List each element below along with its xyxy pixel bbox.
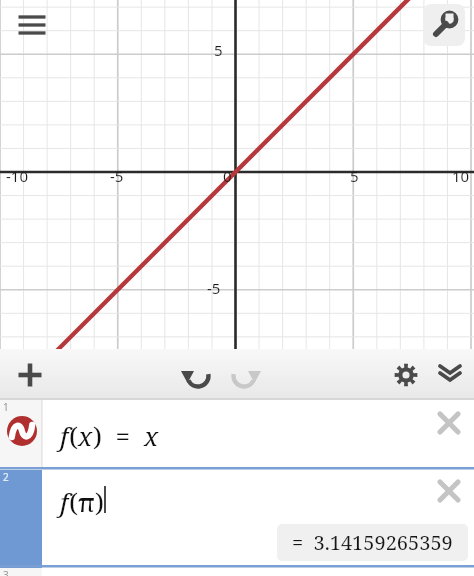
button[interactable]: = 3.14159265359 xyxy=(292,529,453,556)
staticText: π xyxy=(78,484,95,519)
staticText: -10 xyxy=(6,166,28,186)
staticText: 5 xyxy=(214,40,223,60)
button[interactable]: Menu xyxy=(12,6,52,46)
button[interactable]: Collapse xyxy=(428,353,472,397)
staticText: ) xyxy=(95,484,104,519)
staticText: 3 xyxy=(3,568,9,576)
button[interactable]: Undo xyxy=(176,353,220,397)
staticText: 5 xyxy=(350,166,359,186)
staticText: f xyxy=(60,418,69,453)
button[interactable]: Add expression xyxy=(8,353,52,397)
button[interactable]: Redo xyxy=(222,353,266,397)
button[interactable]: 1 xyxy=(0,400,474,467)
staticText: = xyxy=(102,418,144,453)
staticText: ( xyxy=(69,484,78,519)
button[interactable]: Tools xyxy=(423,4,465,46)
staticText: ) xyxy=(93,418,102,453)
button[interactable]: Settings xyxy=(384,353,428,397)
staticText: -5 xyxy=(110,166,124,186)
staticText: = 3.14159265359 xyxy=(292,529,453,556)
button[interactable]: Delete row 1 xyxy=(432,406,466,440)
staticText: 1 xyxy=(3,400,9,414)
staticText: x xyxy=(78,418,93,453)
staticText: 10 xyxy=(452,166,470,186)
staticText: -5 xyxy=(207,278,221,298)
staticText: f xyxy=(60,484,69,519)
staticText: 0 xyxy=(223,166,232,186)
staticText: ( xyxy=(69,418,78,453)
staticText: 2 xyxy=(3,470,9,484)
button[interactable]: 3 xyxy=(0,568,474,576)
staticText: x xyxy=(144,418,159,453)
button[interactable]: 2 xyxy=(0,470,474,568)
button[interactable]: Delete row 2 xyxy=(432,474,466,508)
